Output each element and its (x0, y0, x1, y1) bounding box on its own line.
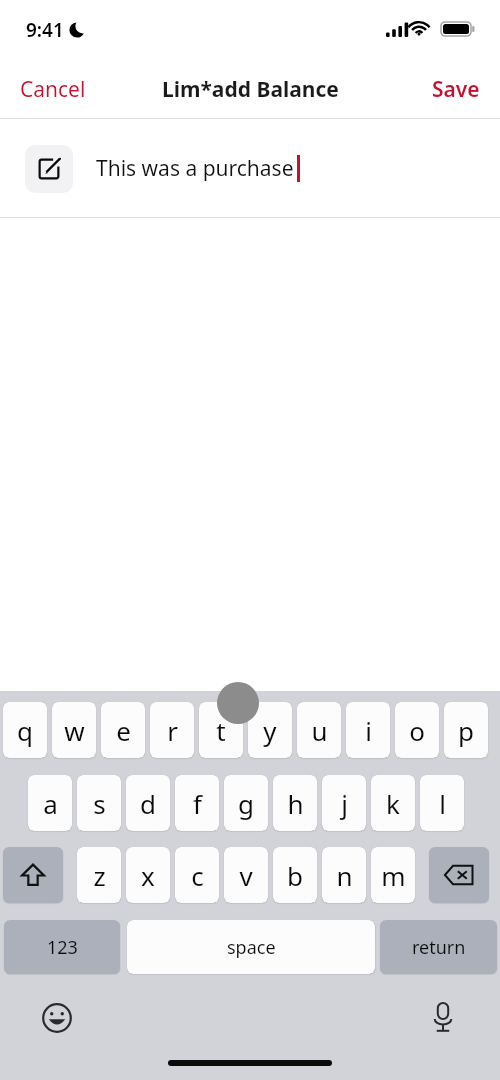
button[interactable]: space (127, 920, 375, 974)
button[interactable]: f (175, 775, 219, 831)
staticText: This was a purchase (96, 154, 294, 183)
button[interactable]: c (175, 847, 219, 903)
staticText: return (412, 935, 466, 960)
button[interactable]: a (28, 775, 72, 831)
staticText: y (263, 713, 277, 748)
button[interactable]: y (248, 702, 292, 758)
button[interactable]: return (380, 920, 497, 974)
staticText: r (167, 713, 178, 748)
staticText: h (287, 786, 304, 821)
button[interactable]: x (126, 847, 170, 903)
staticText: o (409, 713, 425, 748)
button[interactable]: s (77, 775, 121, 831)
button[interactable]: This was a purchase (0, 120, 500, 217)
button[interactable]: z (77, 847, 121, 903)
button[interactable]: v (224, 847, 268, 903)
button[interactable]: Cancel (0, 65, 106, 114)
button[interactable]: Emoji (36, 997, 78, 1039)
button[interactable]: p (444, 702, 488, 758)
staticText: v (239, 858, 253, 893)
button[interactable]: l (420, 775, 464, 831)
staticText: t (216, 713, 226, 748)
staticText: l (439, 786, 446, 821)
button[interactable]: o (395, 702, 439, 758)
button[interactable]: Drag handle (217, 682, 259, 724)
staticText: n (336, 858, 353, 893)
staticText: p (458, 713, 474, 748)
staticText: 9:41 (26, 17, 64, 43)
staticText: f (193, 786, 202, 821)
staticText: m (381, 858, 406, 893)
button[interactable]: Backspace (429, 847, 489, 903)
staticText: q (17, 713, 33, 748)
button[interactable]: t (199, 702, 243, 758)
button[interactable]: g (224, 775, 268, 831)
staticText: 123 (47, 935, 78, 960)
staticText: Save (432, 75, 480, 104)
staticText: z (93, 858, 106, 893)
button[interactable]: b (273, 847, 317, 903)
button[interactable]: j (322, 775, 366, 831)
button[interactable]: Shift (3, 847, 63, 903)
staticText: x (141, 858, 155, 893)
staticText: k (386, 786, 400, 821)
button[interactable]: Save (412, 65, 500, 114)
button[interactable]: Dictate (422, 997, 464, 1039)
staticText: j (341, 786, 348, 821)
staticText: Cancel (20, 75, 86, 104)
button[interactable]: i (346, 702, 390, 758)
staticText: space (227, 935, 276, 960)
button[interactable]: n (322, 847, 366, 903)
staticText: d (140, 786, 156, 821)
button[interactable]: d (126, 775, 170, 831)
staticText: e (116, 713, 131, 748)
staticText: i (365, 713, 372, 748)
staticText: Lim*add Balance (162, 75, 339, 104)
staticText: s (93, 786, 106, 821)
staticText: a (43, 786, 58, 821)
button[interactable]: e (101, 702, 145, 758)
staticText: u (311, 713, 328, 748)
staticText: b (287, 858, 303, 893)
button[interactable]: m (371, 847, 415, 903)
button[interactable]: q (3, 702, 47, 758)
staticText: c (191, 858, 204, 893)
staticText: w (64, 713, 85, 748)
button[interactable]: w (52, 702, 96, 758)
button[interactable]: 123 (4, 920, 120, 974)
button[interactable]: r (150, 702, 194, 758)
button[interactable]: k (371, 775, 415, 831)
button[interactable]: u (297, 702, 341, 758)
button[interactable]: h (273, 775, 317, 831)
staticText: g (238, 786, 254, 821)
